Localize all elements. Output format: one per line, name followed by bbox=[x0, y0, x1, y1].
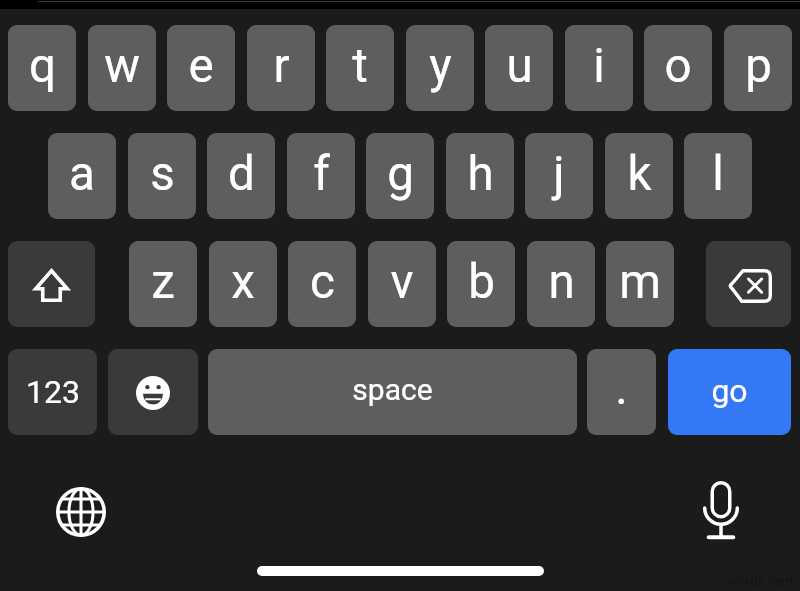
button[interactable]: t bbox=[326, 25, 394, 111]
staticText: m bbox=[619, 254, 661, 310]
button[interactable]: 123 bbox=[8, 349, 97, 435]
staticText: y bbox=[429, 38, 452, 94]
button[interactable]: v bbox=[368, 241, 436, 327]
staticText: g bbox=[387, 146, 414, 202]
staticText: s bbox=[150, 146, 175, 202]
staticText: r bbox=[273, 38, 290, 94]
button[interactable]: Emoji bbox=[108, 349, 198, 435]
staticText: w bbox=[104, 38, 140, 94]
button[interactable]: e bbox=[167, 25, 235, 111]
staticText: v bbox=[390, 254, 414, 310]
staticText: z bbox=[151, 254, 175, 310]
button[interactable]: p bbox=[724, 25, 792, 111]
button[interactable]: space bbox=[208, 349, 577, 435]
staticText: f bbox=[313, 146, 330, 202]
staticText: i bbox=[593, 38, 605, 94]
button[interactable]: x bbox=[209, 241, 277, 327]
staticText: k bbox=[627, 146, 652, 202]
button[interactable]: n bbox=[527, 241, 595, 327]
button[interactable]: go bbox=[668, 349, 791, 435]
button[interactable]: u bbox=[485, 25, 553, 111]
staticText: space bbox=[352, 372, 433, 407]
button[interactable]: a bbox=[48, 133, 116, 219]
button[interactable]: Backspace bbox=[706, 241, 791, 327]
button[interactable]: Dictate bbox=[691, 473, 751, 543]
staticText: h bbox=[467, 146, 494, 202]
button[interactable]: Shift bbox=[8, 241, 95, 327]
button[interactable]: Change keyboard bbox=[50, 482, 111, 542]
staticText: . bbox=[615, 360, 628, 416]
staticText: t bbox=[352, 38, 368, 94]
button[interactable]: f bbox=[287, 133, 355, 219]
staticText: x bbox=[231, 254, 255, 310]
staticText: go bbox=[711, 372, 748, 410]
button[interactable]: . bbox=[587, 349, 656, 435]
staticText: n bbox=[548, 254, 575, 310]
button[interactable]: w bbox=[88, 25, 156, 111]
staticText: p bbox=[745, 38, 772, 94]
staticText: o bbox=[664, 38, 692, 94]
staticText: q bbox=[29, 38, 56, 94]
button[interactable]: y bbox=[406, 25, 474, 111]
button[interactable]: j bbox=[525, 133, 593, 219]
button[interactable]: d bbox=[207, 133, 275, 219]
button[interactable]: o bbox=[644, 25, 712, 111]
button[interactable]: h bbox=[446, 133, 514, 219]
button[interactable]: g bbox=[366, 133, 434, 219]
button[interactable]: l bbox=[684, 133, 752, 219]
staticText: c bbox=[310, 254, 335, 310]
button[interactable]: c bbox=[288, 241, 356, 327]
staticText: 123 bbox=[26, 373, 80, 411]
button[interactable]: r bbox=[247, 25, 315, 111]
staticText: u bbox=[506, 38, 533, 94]
staticText: e bbox=[188, 38, 214, 94]
button[interactable]: q bbox=[8, 25, 76, 111]
staticText: d bbox=[228, 146, 255, 202]
button[interactable]: b bbox=[447, 241, 515, 327]
staticText: b bbox=[468, 254, 495, 310]
staticText: j bbox=[553, 146, 565, 202]
staticText: l bbox=[712, 146, 724, 202]
button[interactable]: s bbox=[128, 133, 196, 219]
button[interactable]: z bbox=[129, 241, 197, 327]
staticText: a bbox=[69, 146, 95, 202]
button[interactable]: i bbox=[565, 25, 633, 111]
button[interactable]: k bbox=[605, 133, 673, 219]
button[interactable]: m bbox=[606, 241, 674, 327]
